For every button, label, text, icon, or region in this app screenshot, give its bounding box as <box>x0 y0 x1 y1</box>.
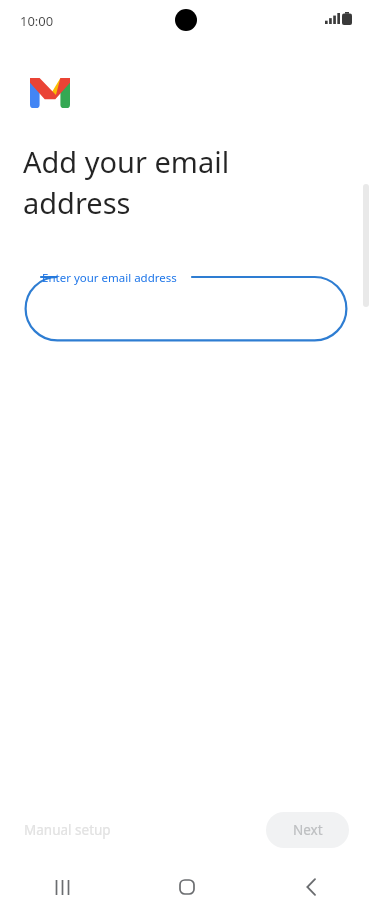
staticText: Next <box>293 821 323 839</box>
staticText: Add your email address <box>23 142 230 223</box>
button[interactable]: Recent apps <box>0 860 125 914</box>
staticText: Manual setup <box>24 821 111 839</box>
button[interactable]: Enter your email address <box>24 270 348 342</box>
staticText: Enter your email address <box>42 270 177 286</box>
button[interactable]: Next <box>266 812 349 848</box>
button[interactable]: Back <box>249 860 373 914</box>
staticText: 10:00 <box>20 12 54 30</box>
button[interactable]: Manual setup <box>12 813 123 847</box>
button[interactable]: Home <box>125 860 249 914</box>
